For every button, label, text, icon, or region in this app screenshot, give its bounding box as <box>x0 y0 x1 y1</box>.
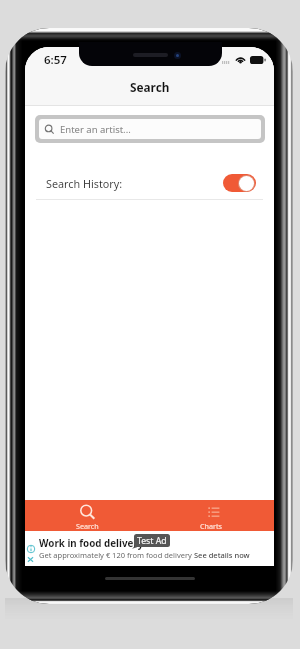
staticText: Work in food delivery <box>39 537 144 550</box>
button[interactable]: Enter an artist... <box>39 119 261 139</box>
staticText: Test Ad <box>137 535 167 547</box>
button[interactable]: Search history toggle <box>223 174 256 192</box>
button[interactable]: Ad info <box>25 531 274 566</box>
staticText: Enter an artist... <box>60 123 131 136</box>
button[interactable]: Search History: <box>25 167 274 199</box>
staticText: Search <box>76 521 99 531</box>
button[interactable]: Search <box>25 500 149 531</box>
staticText: Search <box>130 79 170 95</box>
staticText: 6:57 <box>44 52 67 68</box>
staticText: Search History: <box>46 176 123 191</box>
staticText: See details now <box>194 550 250 560</box>
other: Close ad <box>27 556 34 563</box>
staticText: Get approximately € 120 from food delive… <box>39 550 194 560</box>
staticText: Charts <box>200 521 223 531</box>
other: Ad info <box>27 545 35 553</box>
button[interactable]: Charts <box>149 500 274 531</box>
